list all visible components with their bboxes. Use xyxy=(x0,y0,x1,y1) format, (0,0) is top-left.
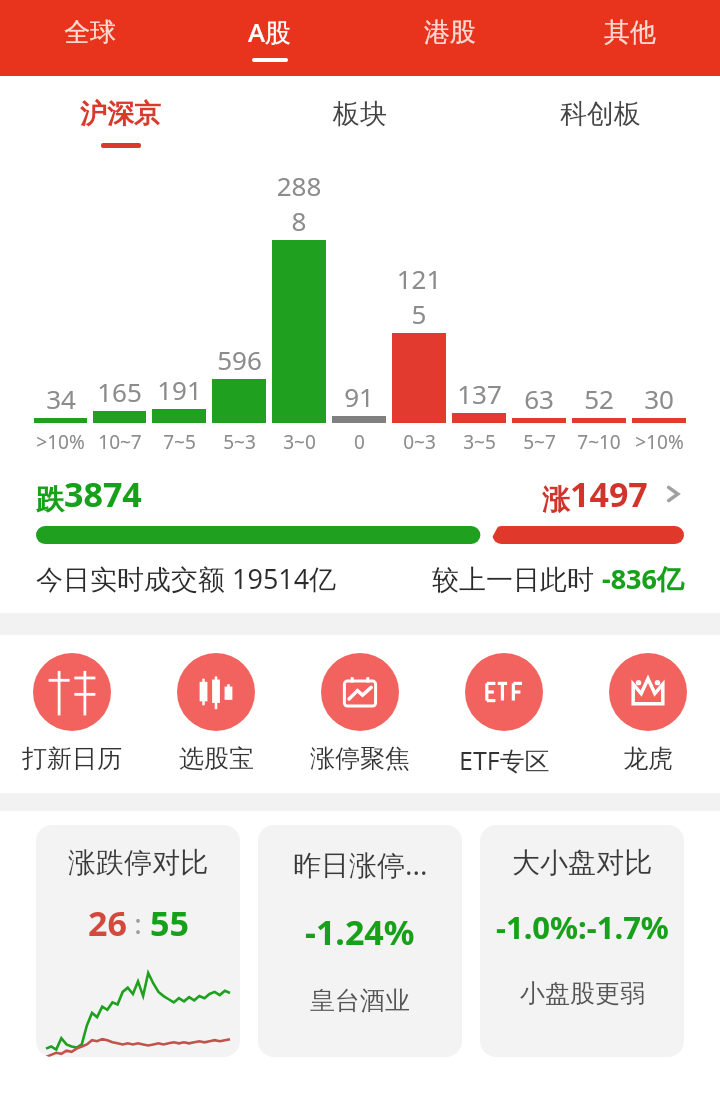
staticText: 沪深京 xyxy=(80,97,161,131)
button[interactable]: 昨日涨停... xyxy=(258,825,462,1057)
button[interactable]: 跌 xyxy=(36,468,684,520)
staticText: 165 xyxy=(97,374,142,409)
staticText: 板块 xyxy=(333,97,387,131)
button[interactable]: 涨停聚焦 xyxy=(288,653,432,774)
staticText: 26 xyxy=(88,900,127,946)
staticText: 5~3 xyxy=(223,429,256,455)
staticText: 5~7 xyxy=(523,429,556,455)
staticText: 10~7 xyxy=(98,429,142,455)
staticText: -836亿 xyxy=(602,560,684,597)
staticText: 跌 xyxy=(36,482,64,517)
staticText: 皇台酒业 xyxy=(310,985,410,1016)
button[interactable]: 港股 xyxy=(360,0,540,76)
staticText: 昨日涨停... xyxy=(293,845,428,883)
button[interactable]: 选股宝 xyxy=(144,653,288,774)
button[interactable]: ETF专区 xyxy=(432,653,576,777)
staticText: 7~5 xyxy=(163,429,196,455)
staticText: 34 xyxy=(46,381,76,416)
staticText: 小盘股更弱 xyxy=(520,978,645,1009)
button[interactable]: 沪深京 xyxy=(0,76,240,168)
staticText: : xyxy=(127,904,150,942)
staticText: 3874 xyxy=(64,471,142,517)
staticText: 科创板 xyxy=(560,97,641,131)
button[interactable]: 大小盘对比 xyxy=(480,825,684,1057)
staticText: 选股宝 xyxy=(179,743,254,774)
button[interactable]: 科创板 xyxy=(480,76,720,168)
staticText: 港股 xyxy=(424,16,476,49)
staticText: 今日实时成交额 19514亿 xyxy=(36,560,337,597)
staticText: 7~10 xyxy=(577,429,621,455)
button[interactable]: 其他 xyxy=(540,0,720,76)
button[interactable]: 龙虎 xyxy=(576,653,720,774)
staticText: A股 xyxy=(248,14,292,50)
staticText: 涨停聚焦 xyxy=(310,743,410,774)
staticText: 55 xyxy=(150,900,189,946)
staticText: 52 xyxy=(584,381,614,416)
button[interactable]: 全球 xyxy=(0,0,180,76)
staticText: -1.0%:-1.7% xyxy=(496,906,669,948)
staticText: 涨跌停对比 xyxy=(68,845,208,880)
staticText: 1215 xyxy=(392,261,446,331)
staticText: 2888 xyxy=(272,168,326,238)
button[interactable]: 板块 xyxy=(240,76,480,168)
button[interactable]: A股 xyxy=(180,0,360,76)
button[interactable]: 打新日历 xyxy=(0,653,144,774)
staticText: 1497 xyxy=(570,471,648,517)
staticText: 137 xyxy=(457,376,502,411)
staticText: 较上一日此时 xyxy=(432,560,602,597)
staticText: 30 xyxy=(644,381,674,416)
other: More xyxy=(662,483,684,505)
staticText: 0 xyxy=(354,429,365,455)
staticText: 涨 xyxy=(542,482,570,517)
button[interactable]: 涨跌停对比 xyxy=(36,825,240,1057)
staticText: >10% xyxy=(635,429,684,455)
staticText: 596 xyxy=(217,342,262,377)
staticText: 龙虎 xyxy=(623,743,673,774)
staticText: ETF专区 xyxy=(459,743,550,777)
staticText: 191 xyxy=(157,372,202,407)
staticText: 63 xyxy=(524,381,554,416)
staticText: 大小盘对比 xyxy=(512,845,652,880)
staticText: >10% xyxy=(36,429,85,455)
staticText: 91 xyxy=(344,379,374,414)
staticText: 3~0 xyxy=(283,429,316,455)
staticText: -1.24% xyxy=(305,909,415,955)
staticText: 打新日历 xyxy=(22,743,122,774)
staticText: 3~5 xyxy=(463,429,496,455)
staticText: 其他 xyxy=(604,16,656,49)
staticText: 0~3 xyxy=(403,429,436,455)
staticText: 全球 xyxy=(64,16,116,49)
